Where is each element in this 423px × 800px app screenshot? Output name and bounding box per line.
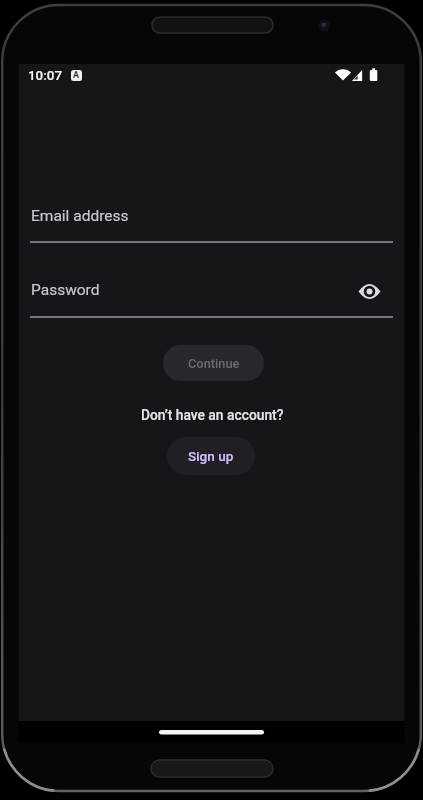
staticText: Sign up [188,448,234,464]
button[interactable]: Continue [163,345,264,381]
staticText: 10:07 [28,68,62,84]
button[interactable]: Email address [30,190,393,243]
button[interactable]: Password [30,265,393,318]
staticText: Email address [31,207,129,225]
button[interactable] [351,273,388,310]
button[interactable]: Sign up [167,437,255,475]
staticText: Don’t have an account? [141,407,284,423]
staticText: A [73,70,80,81]
staticText: Password [31,281,100,299]
staticText: Continue [188,356,240,371]
